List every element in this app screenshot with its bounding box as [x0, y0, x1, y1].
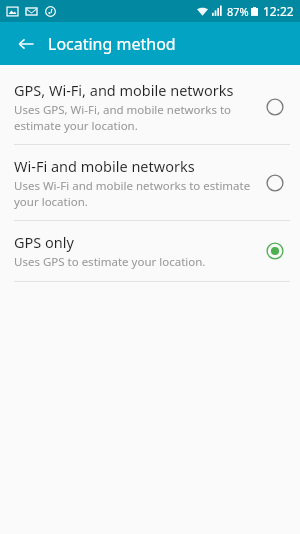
staticText: 12:22: [263, 3, 294, 19]
staticText: Uses Wi-Fi and mobile networks to estima…: [14, 178, 251, 209]
staticText: Wi-Fi and mobile networks: [14, 156, 195, 176]
staticText: Locating method: [48, 33, 176, 55]
button[interactable]: GPS, Wi-Fi, and mobile networks: [0, 69, 300, 144]
button[interactable]: Wi-Fi and mobile networks: [0, 145, 300, 220]
button[interactable]: GPS only: [0, 221, 300, 281]
staticText: GPS, Wi-Fi, and mobile networks: [14, 80, 234, 100]
button[interactable]: Back: [10, 28, 42, 60]
staticText: GPS only: [14, 232, 74, 252]
staticText: Uses GPS, Wi-Fi, and mobile networks to …: [14, 102, 232, 133]
staticText: Uses GPS to estimate your location.: [14, 254, 206, 270]
staticText: 87%: [227, 4, 249, 19]
